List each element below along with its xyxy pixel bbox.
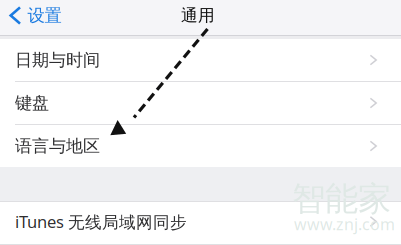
staticText: 语言与地区 bbox=[15, 135, 100, 157]
staticText: 设置 bbox=[28, 5, 62, 26]
staticText: www.znj.com bbox=[294, 213, 395, 235]
staticText: 通用 bbox=[181, 5, 215, 26]
button[interactable]: 日期与时间 bbox=[0, 39, 401, 81]
button[interactable]: 设置 bbox=[0, 0, 72, 35]
staticText: iTunes 无线局域网同步 bbox=[15, 210, 187, 233]
button[interactable]: 键盘 bbox=[0, 82, 401, 124]
button[interactable]: iTunes 无线局域网同步 bbox=[0, 202, 401, 244]
staticText: 键盘 bbox=[15, 92, 49, 114]
staticText: 日期与时间 bbox=[15, 49, 100, 71]
button[interactable]: 语言与地区 bbox=[0, 125, 401, 167]
staticText: 智能家 bbox=[292, 178, 391, 220]
